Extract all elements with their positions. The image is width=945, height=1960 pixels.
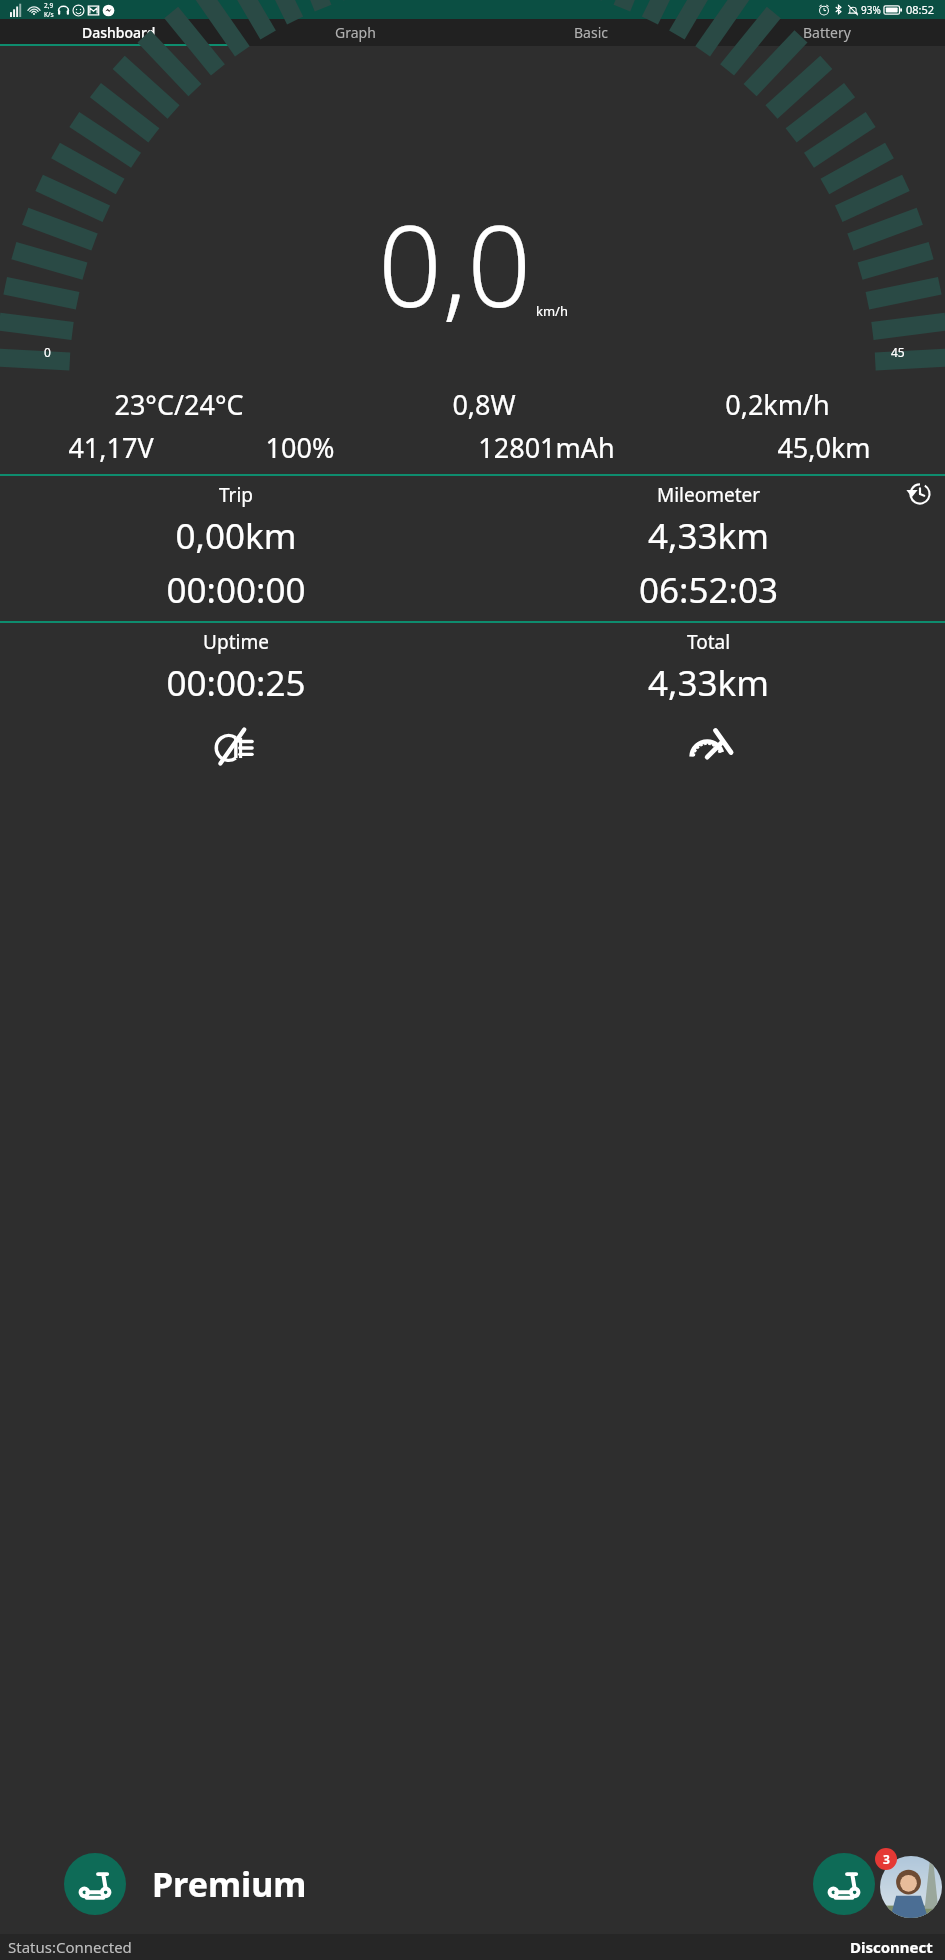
staticText: 93% bbox=[861, 3, 881, 17]
staticText: 0 bbox=[44, 344, 51, 360]
staticText: 3 bbox=[883, 1851, 890, 1867]
staticText: 06:52:03 bbox=[472, 566, 945, 614]
staticText: Total bbox=[472, 629, 945, 655]
staticText: 23°C/24°C bbox=[6, 386, 352, 423]
staticText: 45 bbox=[891, 344, 905, 360]
staticText: Uptime bbox=[0, 629, 472, 655]
button[interactable]: Battery bbox=[709, 19, 945, 46]
staticText: Status:Connected bbox=[8, 1937, 132, 1957]
staticText: 00:00:25 bbox=[0, 659, 472, 707]
button[interactable]: Lights off bbox=[210, 721, 262, 773]
staticText: 0,00km bbox=[0, 512, 472, 560]
button[interactable]: History bbox=[905, 479, 935, 509]
button[interactable]: Premium bbox=[152, 1861, 307, 1907]
staticText: K/s bbox=[44, 10, 54, 19]
button[interactable]: Dashboard bbox=[0, 19, 237, 46]
staticText: 00:00:00 bbox=[0, 566, 472, 614]
staticText: 2,9 bbox=[44, 1, 54, 10]
staticText: 45,0km bbox=[709, 429, 939, 466]
staticText: Mileometer bbox=[472, 482, 945, 508]
staticText: 4,33km bbox=[472, 512, 945, 560]
button[interactable]: Scooter bbox=[64, 1853, 126, 1915]
staticText: Graph bbox=[335, 23, 376, 42]
staticText: 0,2km/h bbox=[616, 386, 939, 423]
button[interactable]: Graph bbox=[237, 19, 473, 46]
button[interactable]: Account, 3 notifications bbox=[877, 1850, 945, 1918]
button[interactable]: Disconnect bbox=[850, 1937, 933, 1957]
staticText: 4,33km bbox=[472, 659, 945, 707]
staticText: Dashboard bbox=[82, 23, 156, 42]
staticText: Battery bbox=[803, 23, 851, 42]
button[interactable]: Speed limit off bbox=[683, 721, 735, 773]
staticText: Basic bbox=[574, 23, 608, 42]
staticText: 0,8W bbox=[352, 386, 616, 423]
button[interactable]: Basic bbox=[473, 19, 709, 46]
staticText: 12801mAh bbox=[384, 429, 709, 466]
staticText: 0,0 bbox=[378, 187, 532, 340]
staticText: Trip bbox=[0, 482, 472, 508]
staticText: 08:52 bbox=[906, 2, 935, 17]
staticText: km/h bbox=[536, 302, 568, 320]
staticText: 41,17V bbox=[6, 429, 216, 466]
button[interactable]: Scooter profile bbox=[813, 1853, 875, 1915]
staticText: 100% bbox=[216, 429, 384, 466]
